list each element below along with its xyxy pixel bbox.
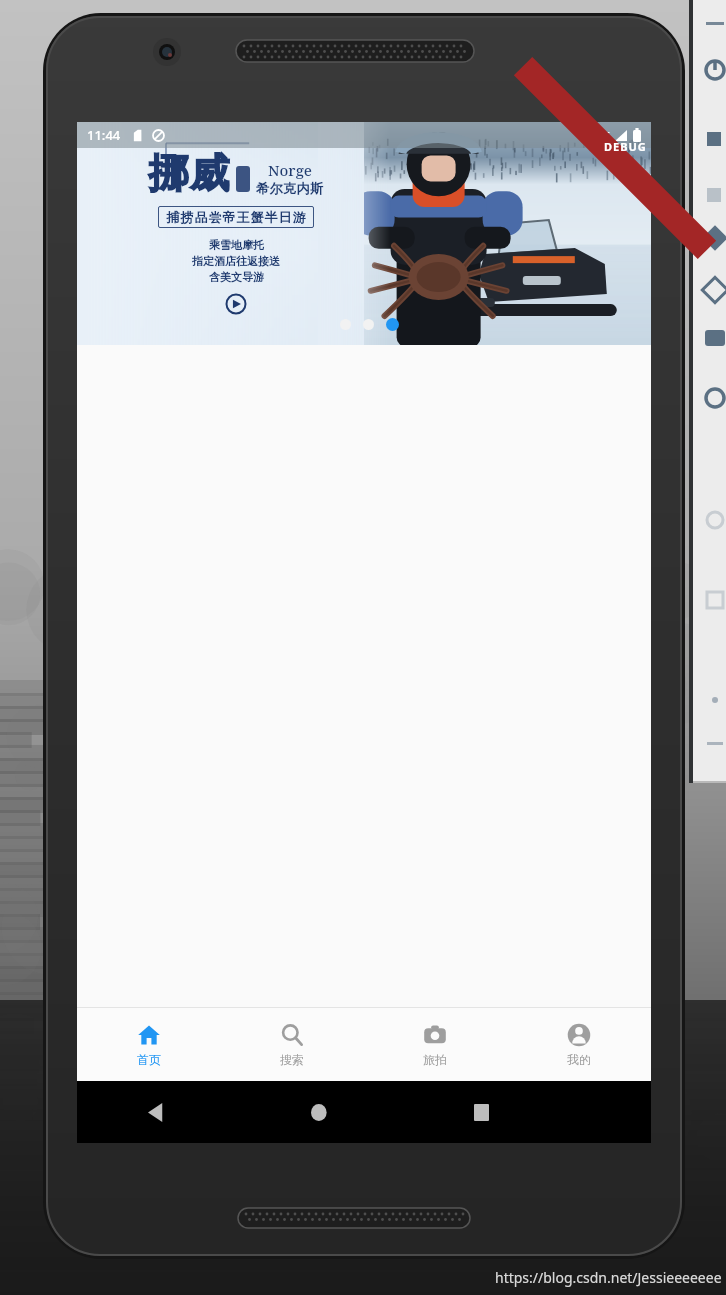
- button[interactable]: Play video: [225, 293, 247, 315]
- staticText: 我的: [567, 1052, 591, 1067]
- button[interactable]: Home: [238, 1081, 400, 1143]
- button[interactable]: 首页: [77, 1008, 220, 1081]
- button[interactable]: 我的: [507, 1008, 651, 1081]
- button[interactable]: 旅拍: [363, 1008, 507, 1081]
- staticText: 乘雪地摩托: [209, 238, 264, 252]
- staticText: 旅拍: [423, 1052, 447, 1067]
- staticText: https://blog.csdn.net/Jessieeeeeee: [495, 1268, 722, 1287]
- staticText: 挪威: [148, 148, 230, 198]
- button[interactable]: 挪威: [77, 122, 651, 345]
- staticText: 首页: [137, 1052, 161, 1067]
- staticText: 搜索: [280, 1052, 304, 1067]
- button[interactable]: Recent apps: [400, 1081, 562, 1143]
- staticText: DEBUG: [604, 139, 647, 154]
- staticText: 捕捞品尝帝王蟹半日游: [166, 209, 306, 225]
- button[interactable]: 搜索: [220, 1008, 363, 1081]
- button[interactable]: Back: [77, 1081, 238, 1143]
- staticText: 指定酒店往返接送: [192, 254, 280, 268]
- staticText: Norge: [268, 160, 312, 180]
- staticText: 含美文导游: [209, 270, 264, 284]
- staticText: 11:44: [87, 126, 121, 144]
- staticText: LTE: [592, 128, 610, 143]
- staticText: 希尔克内斯: [256, 180, 324, 196]
